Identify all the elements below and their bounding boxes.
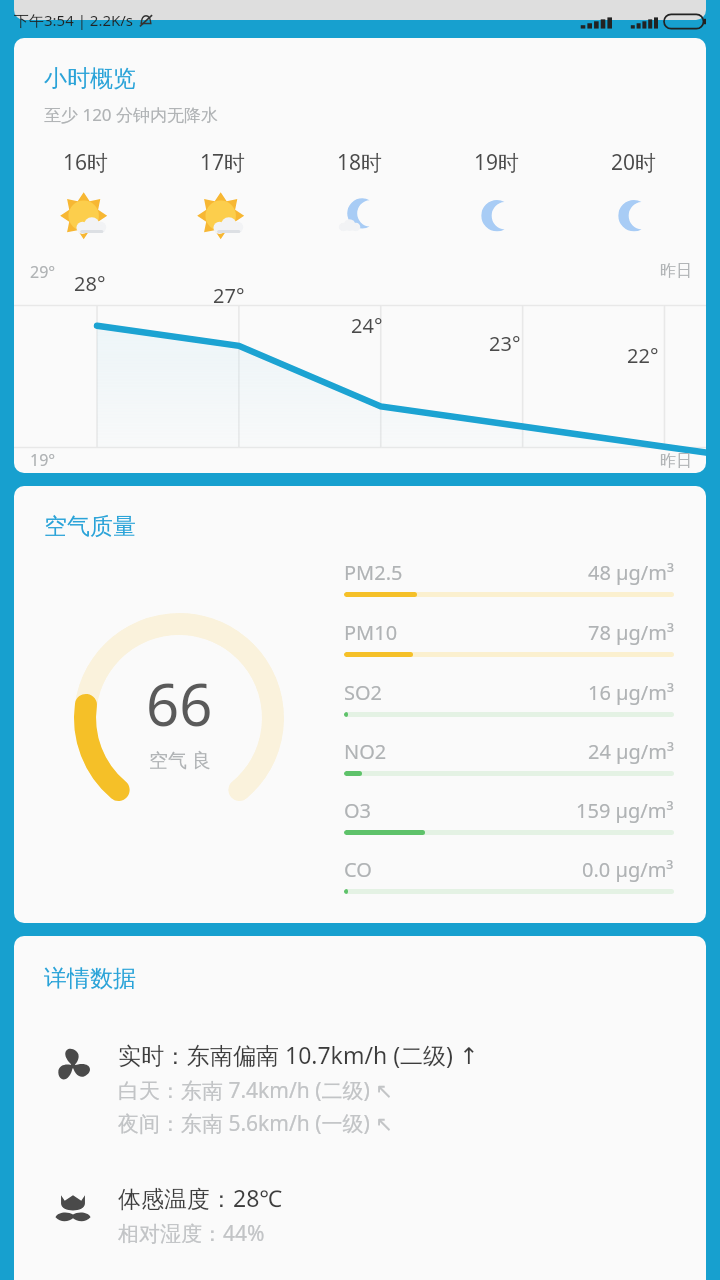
- other: Wind: [50, 1043, 96, 1085]
- staticText: PM2.5: [344, 559, 403, 586]
- staticText: 详情数据: [44, 964, 136, 993]
- staticText: 29°: [30, 261, 56, 283]
- staticText: 159 µg/m³: [576, 797, 674, 824]
- staticText: 昨日: [660, 451, 692, 471]
- staticText: 0.0 µg/m³: [582, 856, 674, 883]
- staticText: 19°: [30, 449, 56, 471]
- staticText: 白天：东南 7.4km/h (二级) ↖: [118, 1076, 393, 1105]
- staticText: 小时概览: [44, 64, 136, 93]
- staticText: O3: [344, 797, 372, 824]
- staticText: CO: [344, 856, 372, 883]
- button[interactable]: 空气质量: [14, 486, 706, 923]
- button[interactable]: O3: [344, 797, 674, 846]
- staticText: 下午3:54 | 2.2K/s: [14, 10, 134, 30]
- staticText: 18时: [337, 148, 383, 177]
- staticText: 24 µg/m³: [588, 738, 674, 765]
- button[interactable]: PM2.5: [344, 559, 674, 609]
- button[interactable]: PM10: [344, 619, 674, 669]
- staticText: 24°: [351, 312, 383, 339]
- staticText: 实时：东南偏南 10.7km/h (二级) ↑: [118, 1039, 479, 1070]
- button[interactable]: 详情数据: [14, 936, 706, 1280]
- staticText: 夜间：东南 5.6km/h (一级) ↖: [118, 1109, 393, 1138]
- other: Feels like temperature: [50, 1186, 96, 1228]
- staticText: NO2: [344, 738, 387, 765]
- staticText: 27°: [213, 282, 245, 309]
- button[interactable]: Feels like temperature: [50, 1182, 706, 1248]
- staticText: 16 µg/m³: [588, 679, 674, 706]
- staticText: 16时: [63, 148, 109, 177]
- button[interactable]: NO2: [344, 738, 674, 787]
- staticText: 空气质量: [44, 512, 136, 541]
- staticText: 28°: [74, 270, 106, 297]
- staticText: 19时: [474, 148, 520, 177]
- staticText: 17时: [200, 148, 246, 177]
- staticText: PM10: [344, 619, 398, 646]
- staticText: SO2: [344, 679, 383, 706]
- button[interactable]: 小时概览: [14, 38, 706, 473]
- staticText: 78 µg/m³: [588, 619, 674, 646]
- staticText: 20时: [611, 148, 657, 177]
- staticText: 昨日: [660, 261, 692, 281]
- button[interactable]: SO2: [344, 679, 674, 728]
- staticText: 至少 120 分钟内无降水: [44, 103, 219, 126]
- staticText: 相对湿度：44%: [118, 1219, 265, 1248]
- button[interactable]: Wind: [50, 1039, 706, 1138]
- staticText: 22°: [627, 342, 659, 369]
- staticText: 空气 良: [149, 747, 211, 773]
- staticText: 23°: [489, 330, 521, 357]
- staticText: 48 µg/m³: [588, 559, 674, 586]
- staticText: 体感温度：28℃: [118, 1182, 283, 1213]
- staticText: 66: [146, 664, 213, 743]
- button[interactable]: CO: [344, 856, 674, 905]
